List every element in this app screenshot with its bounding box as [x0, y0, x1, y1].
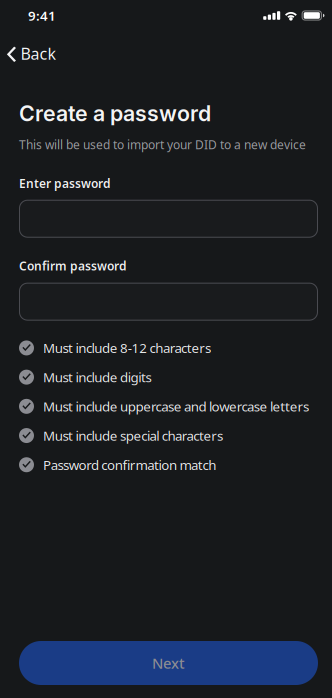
staticText: This will be used to import your DID to …: [19, 137, 306, 152]
staticText: Back: [20, 43, 56, 64]
staticText: Must include special characters: [43, 427, 223, 444]
staticText: Confirm password: [19, 258, 127, 274]
staticText: Must include uppercase and lowercase let…: [43, 397, 309, 415]
staticText: 9:41: [28, 7, 56, 24]
button[interactable]: Next: [19, 641, 318, 685]
staticText: Enter password: [19, 175, 111, 191]
staticText: Must include digits: [43, 368, 152, 386]
staticText: Must include 8-12 characters: [43, 339, 211, 357]
button[interactable]: Back: [0, 36, 68, 71]
staticText: Next: [152, 653, 185, 673]
staticText: Password confirmation match: [43, 456, 216, 474]
staticText: Create a password: [19, 100, 211, 126]
